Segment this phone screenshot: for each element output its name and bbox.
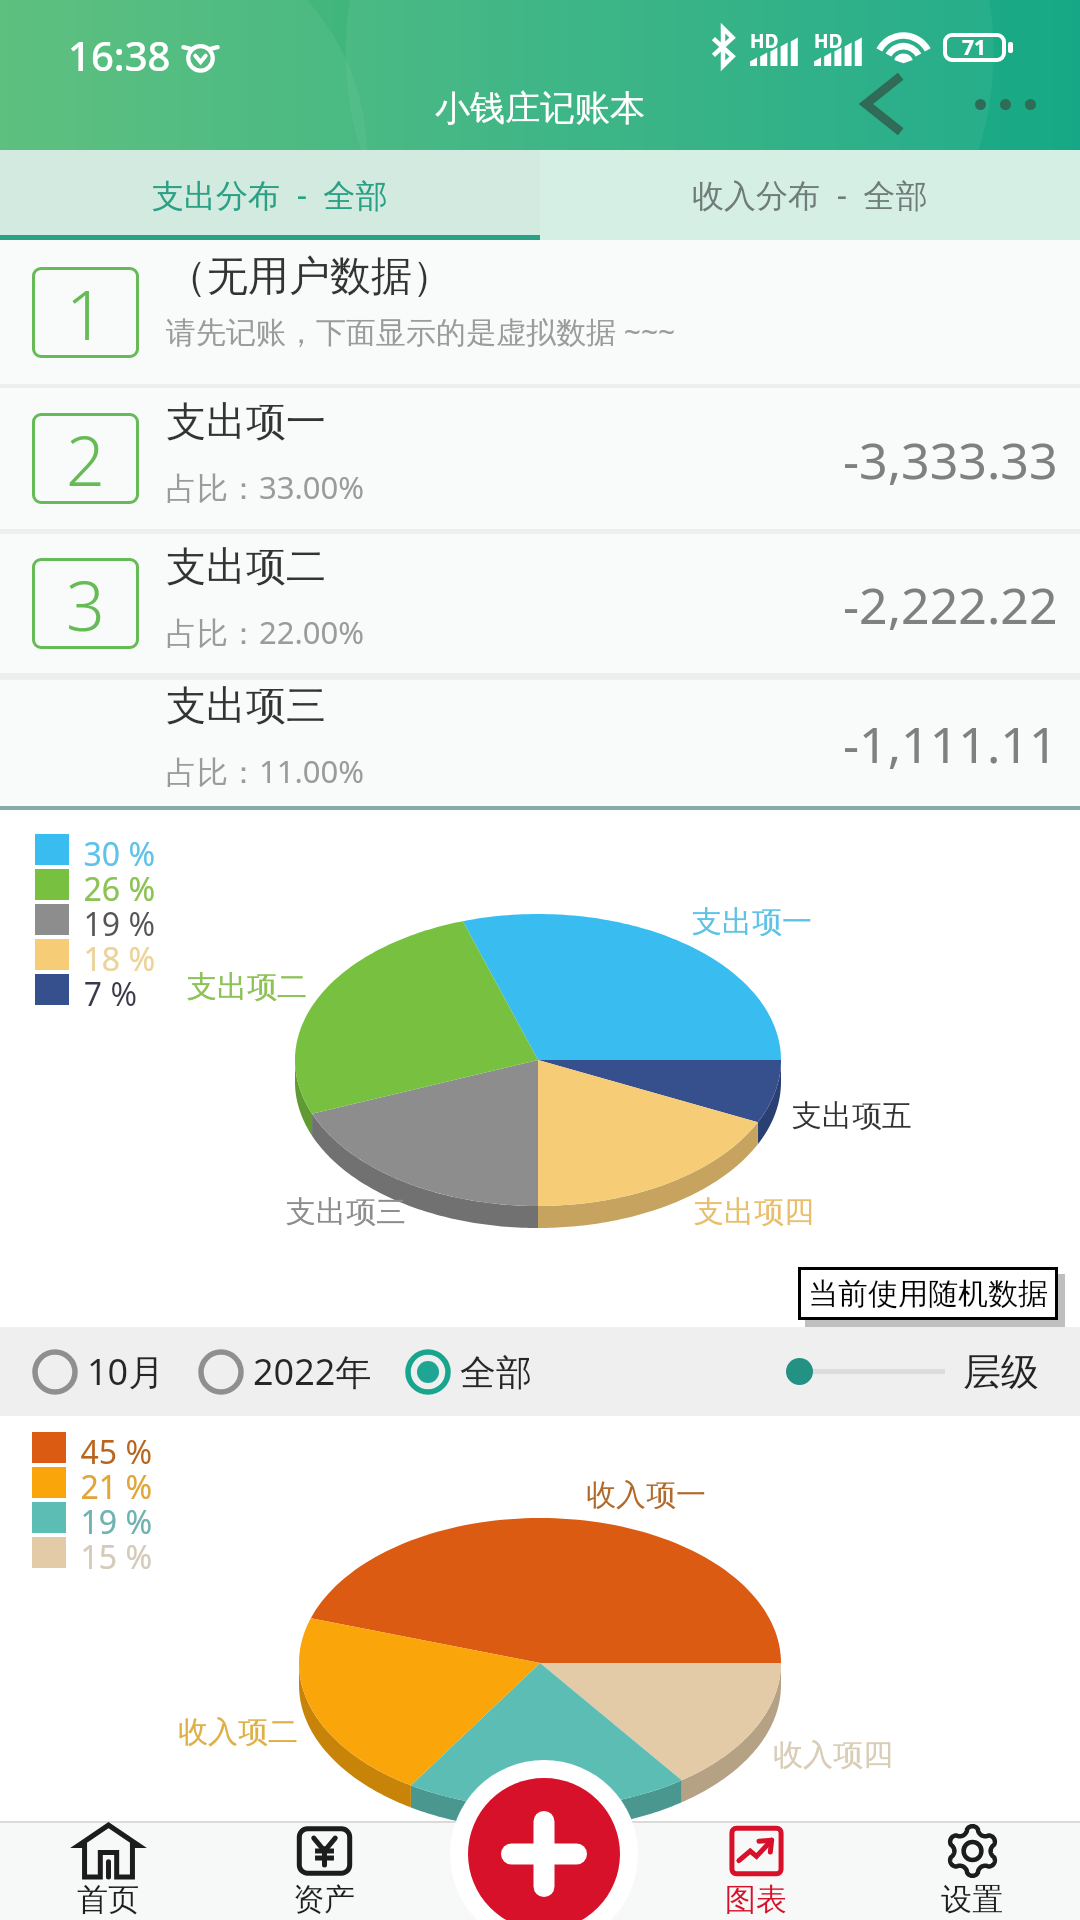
staticText: 设置 bbox=[941, 1880, 1003, 1919]
staticText: 占比：33.00% bbox=[166, 466, 364, 508]
staticText: 7 % bbox=[83, 972, 137, 1007]
button[interactable]: 支出项三 bbox=[0, 680, 1080, 806]
staticText: 小钱庄记账本 bbox=[435, 86, 645, 130]
staticText: 支出项一 bbox=[166, 396, 326, 446]
staticText: 全部 bbox=[460, 1350, 532, 1395]
staticText: 支出项三 bbox=[166, 680, 326, 730]
button[interactable]: 支出分布 - 全部 bbox=[0, 150, 540, 240]
staticText: 2022年 bbox=[253, 1347, 372, 1396]
staticText: 71 bbox=[962, 33, 987, 62]
staticText: 支出分布 - 全部 bbox=[152, 173, 388, 217]
staticText: 支出项五 bbox=[792, 1097, 912, 1135]
staticText: 45 % bbox=[80, 1430, 152, 1465]
staticText: -2,222.22 bbox=[843, 571, 1058, 639]
staticText: 10月 bbox=[87, 1347, 165, 1396]
staticText: 占比：22.00% bbox=[166, 611, 364, 653]
button[interactable]: Back bbox=[848, 68, 914, 140]
staticText: 收入项四 bbox=[773, 1736, 893, 1774]
button[interactable]: 1 bbox=[0, 240, 1080, 384]
staticText: 支出项三 bbox=[286, 1193, 406, 1231]
staticText: 收入项二 bbox=[178, 1713, 298, 1751]
staticText: 占比：11.00% bbox=[166, 750, 364, 792]
staticText: 2 bbox=[66, 413, 105, 504]
staticText: 支出项二 bbox=[166, 541, 326, 591]
button[interactable]: 2 bbox=[0, 388, 1080, 529]
staticText: 15 % bbox=[80, 1535, 152, 1570]
button[interactable]: 设置 bbox=[864, 1821, 1080, 1920]
staticText: 资产 bbox=[293, 1880, 355, 1919]
staticText: 首页 bbox=[77, 1880, 139, 1919]
button[interactable]: 10月 bbox=[32, 1347, 165, 1396]
staticText: 收入项一 bbox=[586, 1476, 706, 1514]
staticText: HD bbox=[814, 28, 843, 54]
button[interactable]: 全部 bbox=[405, 1349, 532, 1395]
staticText: HD bbox=[750, 28, 779, 54]
staticText: 支出项四 bbox=[694, 1193, 814, 1231]
staticText: 19 % bbox=[83, 902, 155, 937]
staticText: 层级 bbox=[963, 1348, 1039, 1396]
button[interactable]: 收入分布 - 全部 bbox=[540, 150, 1080, 240]
staticText: 图表 bbox=[725, 1880, 787, 1919]
staticText: 支出项二 bbox=[187, 968, 307, 1006]
staticText: -3,333.33 bbox=[843, 426, 1058, 494]
staticText: 19 % bbox=[80, 1500, 152, 1535]
button[interactable]: 资产 bbox=[216, 1821, 432, 1920]
button[interactable]: 2022年 bbox=[198, 1347, 372, 1396]
staticText: 16:38 bbox=[68, 28, 171, 82]
staticText: 26 % bbox=[83, 867, 155, 902]
staticText: （无用户数据） bbox=[166, 251, 453, 303]
button[interactable]: 图表 bbox=[648, 1821, 864, 1920]
button[interactable]: Add record bbox=[468, 1778, 620, 1920]
staticText: 请先记账，下面显示的是虚拟数据 ~~~ bbox=[166, 311, 676, 352]
staticText: -1,111.11 bbox=[843, 710, 1058, 778]
staticText: 30 % bbox=[83, 832, 155, 867]
button[interactable]: Level slider bbox=[786, 1358, 813, 1385]
staticText: 18 % bbox=[83, 937, 155, 972]
staticText: 支出项一 bbox=[692, 903, 812, 941]
staticText: 21 % bbox=[80, 1465, 152, 1500]
button[interactable]: 3 bbox=[0, 534, 1080, 673]
button[interactable]: 首页 bbox=[0, 1821, 216, 1920]
staticText: 1 bbox=[66, 267, 105, 358]
staticText: 当前使用随机数据 bbox=[808, 1275, 1048, 1313]
staticText: 3 bbox=[66, 558, 105, 649]
staticText: 收入分布 - 全部 bbox=[692, 173, 928, 217]
button[interactable]: More options bbox=[960, 74, 1050, 134]
